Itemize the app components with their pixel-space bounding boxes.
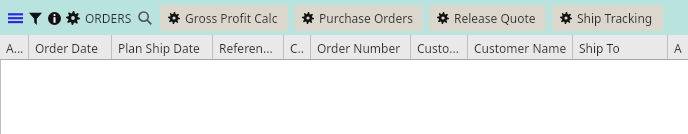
button[interactable]: Plan Ship Date xyxy=(112,35,212,60)
button[interactable]: Release Quote xyxy=(429,5,546,31)
staticText: Add xyxy=(674,40,688,56)
button[interactable]: Settings xyxy=(64,9,82,27)
staticText: C... xyxy=(290,40,307,56)
staticText: Custo... xyxy=(417,40,459,56)
button[interactable]: Search xyxy=(136,9,154,27)
staticText: Gross Profit Calc xyxy=(185,10,278,26)
staticText: Release Quote xyxy=(454,10,536,26)
button[interactable]: A... xyxy=(0,35,28,60)
button[interactable]: Filter xyxy=(26,9,44,27)
button[interactable]: Menu xyxy=(5,8,25,28)
button[interactable]: Order Number xyxy=(311,35,410,60)
button[interactable]: Info xyxy=(45,9,63,27)
button[interactable]: Custo... xyxy=(411,35,467,60)
staticText: Ship Tracking xyxy=(577,10,653,26)
button[interactable]: ORDERS xyxy=(85,10,132,26)
button[interactable]: Referen... xyxy=(213,35,283,60)
button[interactable]: Ship Tracking xyxy=(552,5,663,31)
staticText: Order Number xyxy=(317,40,401,56)
button[interactable]: Gross Profit Calc xyxy=(160,5,288,31)
button[interactable]: Customer Name xyxy=(468,35,572,60)
staticText: Plan Ship Date xyxy=(118,40,200,56)
staticText: Order Date xyxy=(35,40,98,56)
staticText: Referen... xyxy=(219,40,273,56)
staticText: Ship To xyxy=(579,40,620,56)
button[interactable]: Order Date xyxy=(29,35,111,60)
button[interactable]: Purchase Orders xyxy=(294,5,423,31)
staticText: A... xyxy=(6,40,24,56)
staticText: Customer Name xyxy=(474,40,567,56)
button[interactable]: C... xyxy=(284,35,310,60)
button[interactable]: Ship To xyxy=(573,35,667,60)
button[interactable]: Add xyxy=(668,35,688,60)
staticText: Purchase Orders xyxy=(319,10,413,26)
